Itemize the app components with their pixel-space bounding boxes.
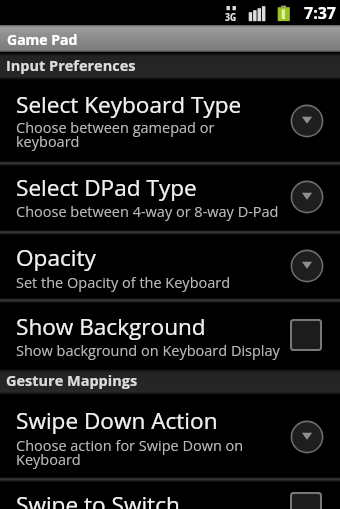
button[interactable]: Open list: [285, 415, 329, 459]
staticText: 7:37: [304, 2, 337, 24]
staticText: 3G: [225, 9, 237, 24]
staticText: Input Preferences: [6, 56, 136, 76]
staticText: Swipe Down Action: [16, 405, 218, 436]
staticText: Choose between 4-way or 8-way D-Pad: [16, 202, 279, 222]
staticText: Set the Opacity of the Keyboard: [16, 273, 231, 293]
button[interactable]: Swipe to Switch: [0, 479, 340, 509]
staticText: Game Pad: [7, 30, 78, 49]
staticText: Show Background: [16, 311, 206, 342]
button[interactable]: Swipe Down Action: [0, 395, 340, 479]
button[interactable]: Select DPad Type: [0, 163, 340, 232]
staticText: Select DPad Type: [16, 172, 197, 203]
button[interactable]: Opacity: [0, 232, 340, 300]
staticText: Opacity: [16, 242, 96, 273]
button[interactable]: Toggle setting: [284, 313, 328, 357]
staticText: Choose between gamepad or keyboard: [16, 118, 221, 151]
button[interactable]: Game Pad: [0, 25, 340, 52]
staticText: Choose action for Swipe Down on Keyboard: [16, 436, 248, 469]
button[interactable]: Toggle setting: [284, 492, 328, 509]
button[interactable]: Select Keyboard Type: [0, 80, 340, 163]
staticText: Swipe to Switch: [16, 489, 180, 509]
button[interactable]: Open list: [285, 244, 329, 288]
button[interactable]: Show Background: [0, 300, 340, 368]
staticText: Gesture Mappings: [6, 371, 138, 391]
button[interactable]: Open list: [285, 99, 329, 143]
staticText: Select Keyboard Type: [16, 89, 242, 120]
staticText: Show background on Keyboard Display: [16, 341, 280, 361]
button[interactable]: Open list: [285, 175, 329, 219]
